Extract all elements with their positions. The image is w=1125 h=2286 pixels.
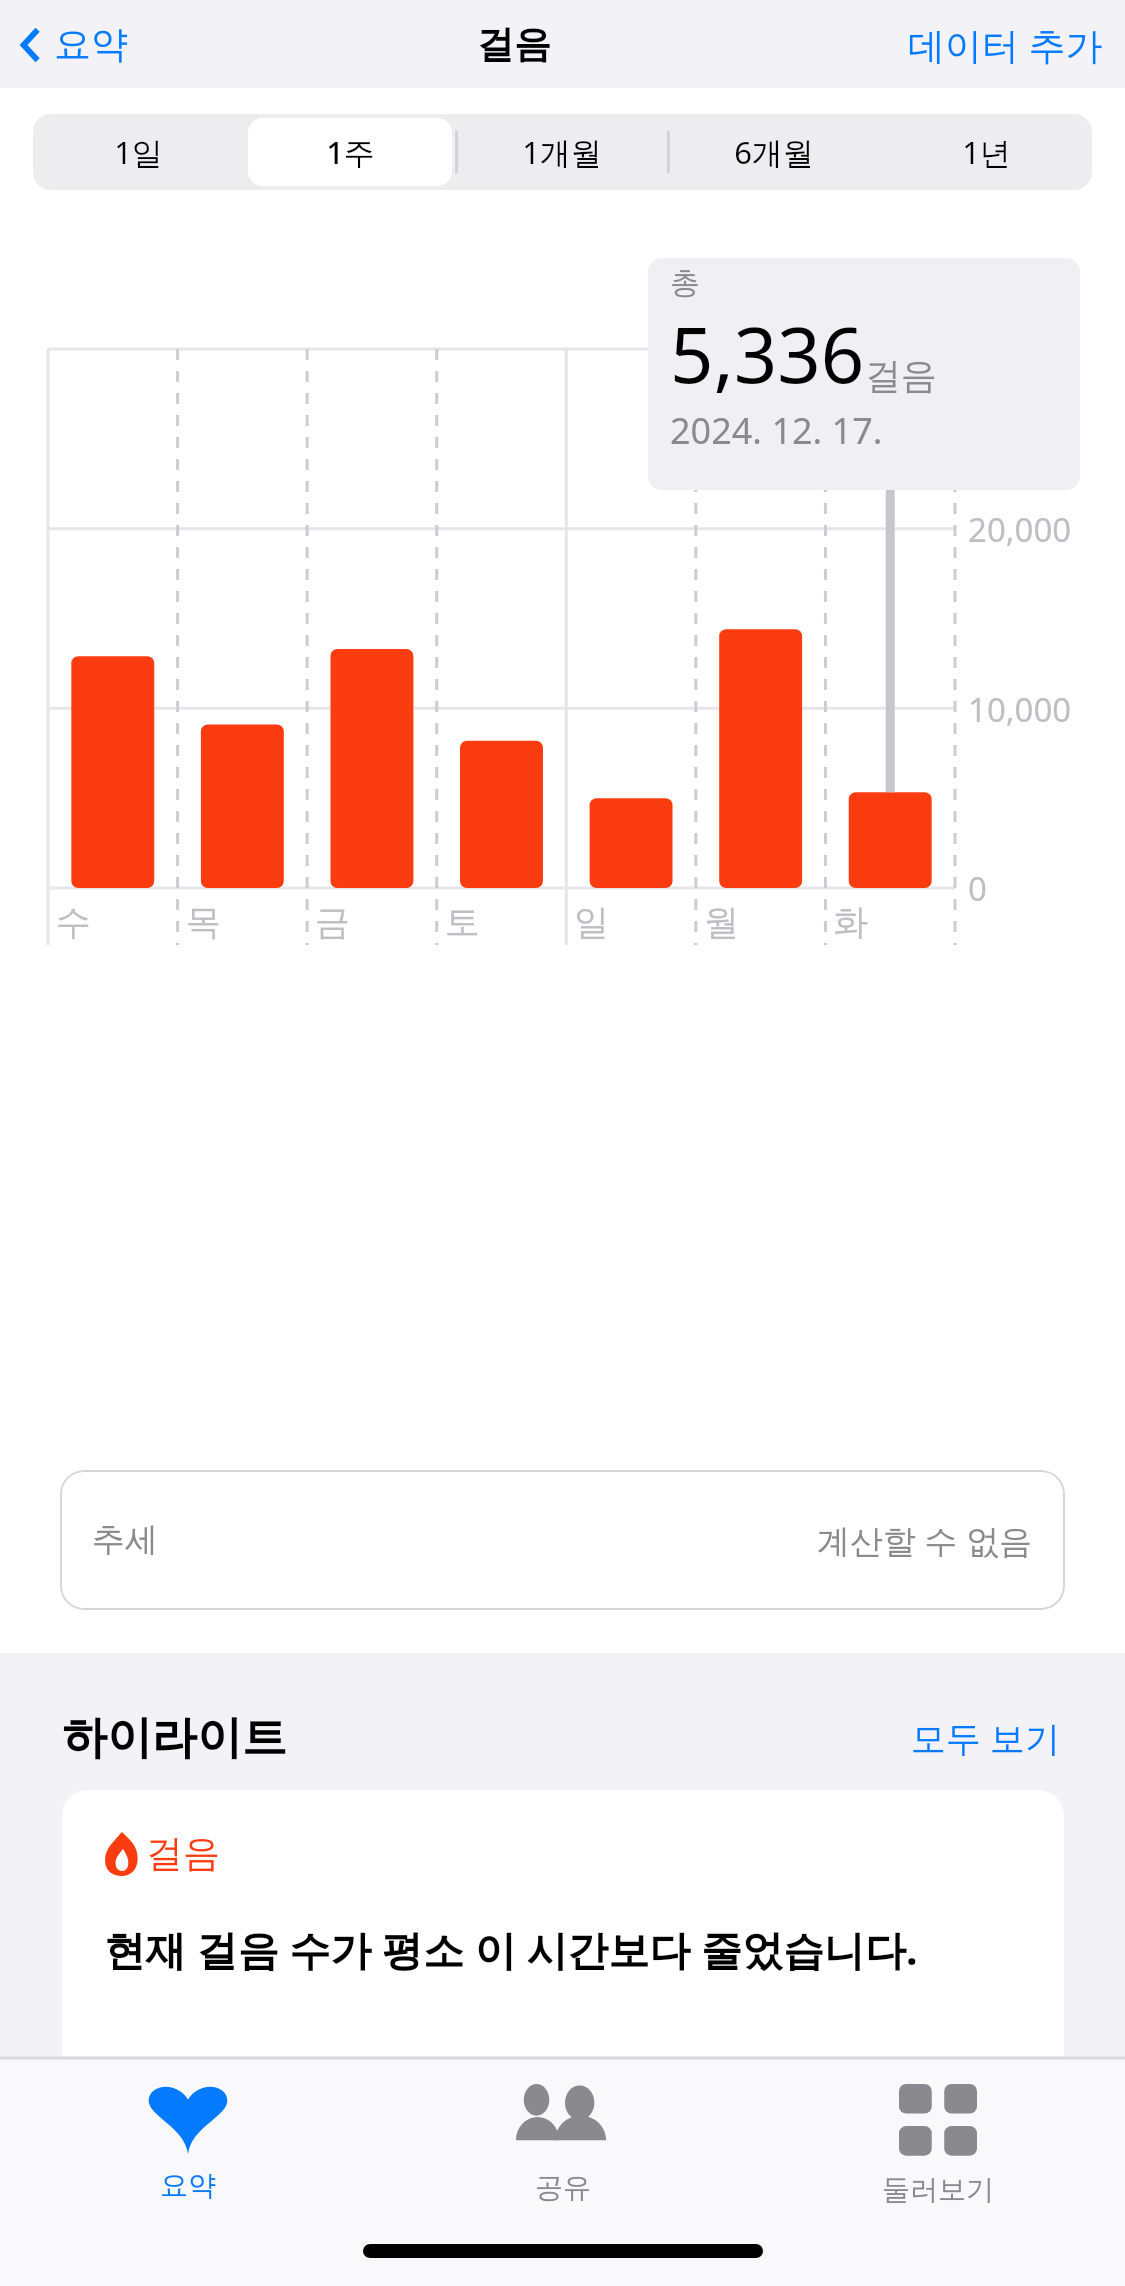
staticText: 1개월 <box>522 131 602 173</box>
staticText: 요약 <box>160 2168 216 2203</box>
button[interactable]: 1일 <box>37 118 240 186</box>
button[interactable]: 데이터 추가 <box>886 5 1125 84</box>
button[interactable]: 1주 <box>248 118 452 186</box>
staticText: 모두 보기 <box>911 1714 1061 1762</box>
staticText: 추세 <box>92 1519 158 1561</box>
staticText: 5,336 <box>670 302 865 406</box>
button[interactable]: 1개월 <box>460 118 664 186</box>
staticText: 걸음 <box>146 1830 220 1877</box>
staticText: 1주 <box>326 131 375 173</box>
button[interactable]: 6개월 <box>672 118 876 186</box>
staticText: 계산할 수 없음 <box>817 1518 1033 1563</box>
button[interactable]: 걸음 <box>62 1790 1064 2090</box>
staticText: 20,000 <box>968 507 1072 552</box>
button[interactable]: 1년 <box>884 118 1088 186</box>
staticText: 데이터 추가 <box>908 19 1103 70</box>
staticText: 요약 <box>54 21 128 68</box>
staticText: 화 <box>833 900 868 944</box>
staticText: 수 <box>56 900 91 944</box>
staticText: 둘러보기 <box>882 2172 994 2207</box>
staticText: 현재 걸음 수가 평소 이 시간보다 줄었습니다. <box>104 1921 918 1977</box>
staticText: 걸음 <box>477 21 551 68</box>
staticText: 0 <box>968 866 987 911</box>
button[interactable]: 요약 <box>0 2076 375 2211</box>
staticText: 10,000 <box>968 687 1072 732</box>
staticText: 금 <box>315 900 350 944</box>
staticText: 일 <box>574 900 609 944</box>
staticText: 걸음 <box>865 353 937 398</box>
staticText: 목 <box>186 900 221 944</box>
staticText: 2024. 12. 17. <box>670 406 883 455</box>
button[interactable]: 추세 <box>60 1470 1065 1610</box>
staticText: 1일 <box>114 131 163 173</box>
staticText: 1년 <box>962 131 1011 173</box>
staticText: 하이라이트 <box>62 1710 287 1767</box>
staticText: 월 <box>704 900 739 944</box>
button[interactable]: 모두 보기 <box>905 1708 1067 1768</box>
staticText: 6개월 <box>734 131 814 173</box>
button[interactable]: 공유 <box>375 2076 750 2213</box>
button[interactable]: 둘러보기 <box>750 2076 1125 2215</box>
other: 걸음 <box>104 1832 138 1876</box>
staticText: 토 <box>445 900 480 944</box>
staticText: 공유 <box>535 2170 591 2205</box>
staticText: 총 <box>670 264 700 302</box>
button[interactable]: 요약 <box>0 9 142 80</box>
